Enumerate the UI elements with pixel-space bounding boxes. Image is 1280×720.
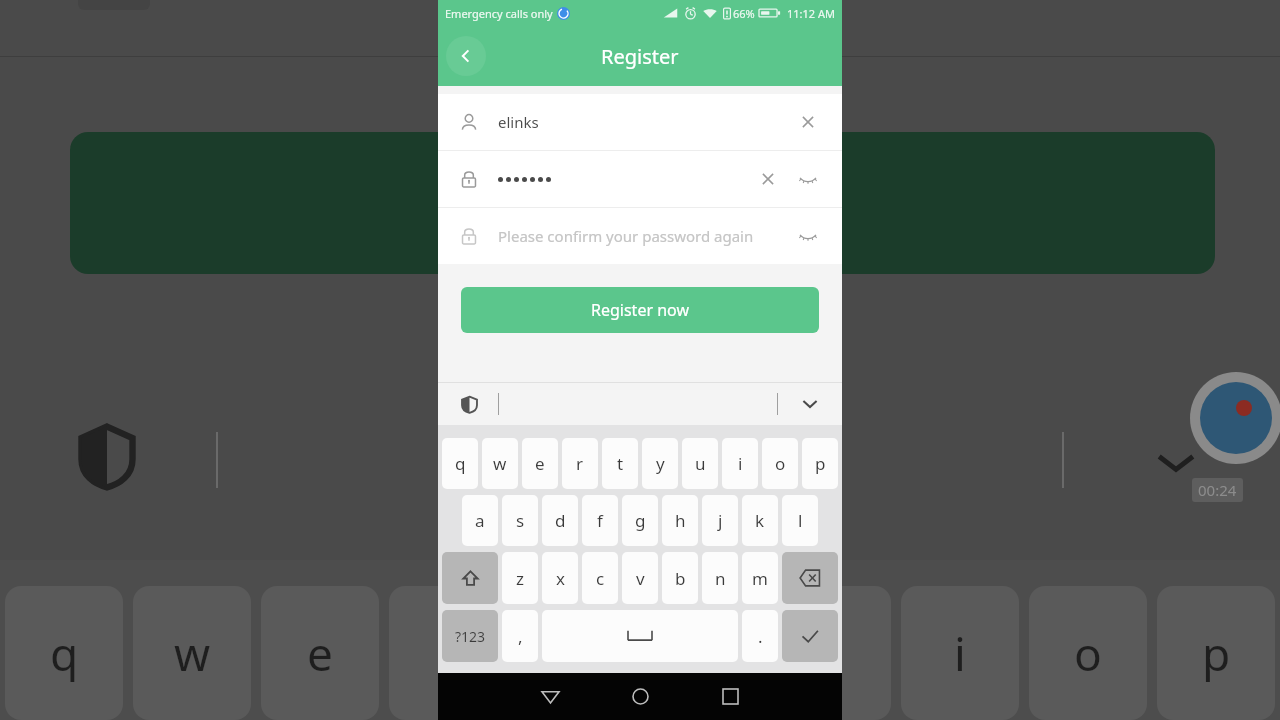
button[interactable]: Clear: [796, 110, 820, 134]
staticText: r: [576, 452, 584, 475]
button[interactable]: Done: [782, 610, 838, 662]
staticText: Please confirm your password again (requ…: [498, 226, 790, 246]
staticText: 00:24: [1198, 480, 1237, 500]
button[interactable]: o: [762, 438, 798, 489]
staticText: ?123: [455, 627, 486, 646]
staticText: ,: [518, 625, 523, 648]
staticText: k: [755, 509, 765, 532]
button[interactable]: Register now: [461, 287, 819, 333]
staticText: u: [695, 452, 706, 475]
button[interactable]: Hide keyboard: [796, 390, 824, 418]
staticText: z: [516, 567, 524, 590]
button[interactable]: u: [682, 438, 718, 489]
button[interactable]: Clear: [438, 151, 842, 207]
button[interactable]: Shift: [442, 552, 498, 604]
button[interactable]: Please confirm your password again (requ…: [438, 208, 842, 264]
staticText: elinks: [498, 112, 796, 132]
button[interactable]: .: [742, 610, 778, 662]
staticText: g: [635, 509, 646, 532]
staticText: q: [455, 452, 466, 475]
button[interactable]: ,: [502, 610, 538, 662]
button[interactable]: z: [502, 552, 538, 604]
button[interactable]: b: [662, 552, 698, 604]
staticText: Emergency calls only: [445, 6, 553, 21]
staticText: e: [307, 622, 333, 685]
staticText: c: [596, 567, 605, 590]
staticText: 11:12 AM: [787, 6, 835, 21]
button[interactable]: Security: [456, 391, 482, 417]
button[interactable]: j: [702, 495, 738, 546]
button[interactable]: Clear: [756, 167, 780, 191]
button[interactable]: Back: [523, 673, 577, 720]
staticText: q: [50, 622, 79, 685]
staticText: s: [516, 509, 525, 532]
button[interactable]: p: [802, 438, 838, 489]
staticText: m: [752, 567, 768, 590]
button[interactable]: c: [582, 552, 618, 604]
button[interactable]: d: [542, 495, 578, 546]
staticText: x: [556, 567, 565, 590]
staticText: l: [798, 509, 803, 532]
button[interactable]: n: [702, 552, 738, 604]
button[interactable]: x: [542, 552, 578, 604]
button[interactable]: Back: [446, 36, 486, 76]
staticText: v: [636, 567, 645, 590]
staticText: j: [718, 509, 723, 532]
button[interactable]: t: [602, 438, 638, 489]
button[interactable]: q: [442, 438, 478, 489]
button[interactable]: k: [742, 495, 778, 546]
button[interactable]: a: [462, 495, 498, 546]
staticText: b: [675, 567, 686, 590]
button[interactable]: ?123: [442, 610, 498, 662]
staticText: p: [1202, 622, 1231, 685]
button[interactable]: Space: [542, 610, 738, 662]
staticText: f: [597, 509, 603, 532]
staticText: Register now: [591, 299, 690, 321]
staticText: o: [1074, 622, 1102, 685]
button[interactable]: Home: [613, 673, 667, 720]
staticText: i: [738, 452, 743, 475]
button[interactable]: s: [502, 495, 538, 546]
button[interactable]: e: [522, 438, 558, 489]
staticText: a: [475, 509, 485, 532]
button[interactable]: l: [782, 495, 818, 546]
staticText: w: [493, 452, 507, 475]
staticText: t: [617, 452, 624, 475]
staticText: n: [715, 567, 726, 590]
staticText: y: [656, 452, 665, 475]
button[interactable]: Show password: [796, 167, 820, 191]
staticText: 66%: [733, 6, 755, 21]
staticText: o: [775, 452, 786, 475]
button[interactable]: y: [642, 438, 678, 489]
staticText: p: [815, 452, 826, 475]
button[interactable]: w: [482, 438, 518, 489]
button[interactable]: v: [622, 552, 658, 604]
button[interactable]: Show password: [796, 224, 820, 248]
button[interactable]: elinks: [438, 94, 842, 150]
button[interactable]: i: [722, 438, 758, 489]
button[interactable]: h: [662, 495, 698, 546]
staticText: w: [174, 622, 211, 685]
staticText: i: [954, 622, 966, 685]
staticText: h: [675, 509, 686, 532]
staticText: Register: [601, 43, 679, 70]
button[interactable]: f: [582, 495, 618, 546]
button[interactable]: g: [622, 495, 658, 546]
button[interactable]: m: [742, 552, 778, 604]
button[interactable]: Recents: [703, 673, 757, 720]
button[interactable]: r: [562, 438, 598, 489]
staticText: e: [535, 452, 545, 475]
staticText: .: [758, 625, 763, 648]
staticText: d: [555, 509, 566, 532]
button[interactable]: Backspace: [782, 552, 838, 604]
